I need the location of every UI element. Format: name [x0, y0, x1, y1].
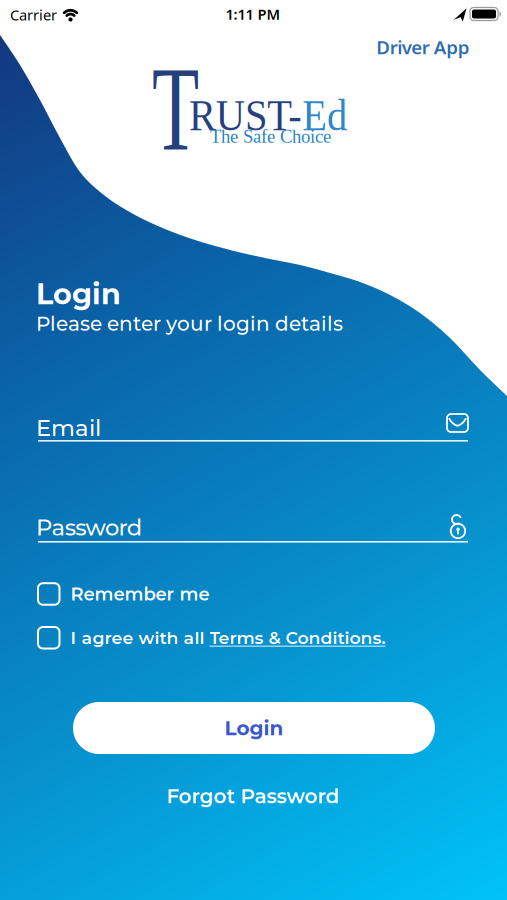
- staticText: Login: [224, 716, 283, 740]
- staticText: RUST-: [189, 91, 312, 140]
- staticText: Email: [36, 414, 101, 442]
- button[interactable]: Remember me: [38, 583, 209, 605]
- staticText: T: [152, 42, 226, 176]
- staticText: 1:11 PM: [225, 4, 280, 24]
- button[interactable]: I agree with all Terms & Conditions.: [38, 627, 385, 648]
- button[interactable]: Driver App: [376, 35, 470, 59]
- staticText: I agree with all Terms & Conditions.: [70, 627, 385, 648]
- staticText: Please enter your login details: [36, 311, 343, 336]
- staticText: Password: [36, 513, 142, 541]
- staticText: Login: [36, 276, 121, 311]
- staticText: Carrier: [10, 5, 57, 24]
- staticText: Forgot Password: [166, 784, 339, 808]
- staticText: Remember me: [70, 583, 209, 605]
- button[interactable]: Login: [73, 702, 435, 754]
- staticText: The Safe Choice: [210, 126, 331, 147]
- staticText: Ed: [312, 91, 361, 140]
- button[interactable]: Forgot Password: [166, 784, 339, 808]
- button[interactable]: Email: [36, 414, 470, 448]
- button[interactable]: Password: [36, 511, 470, 547]
- staticText: Driver App: [376, 35, 470, 59]
